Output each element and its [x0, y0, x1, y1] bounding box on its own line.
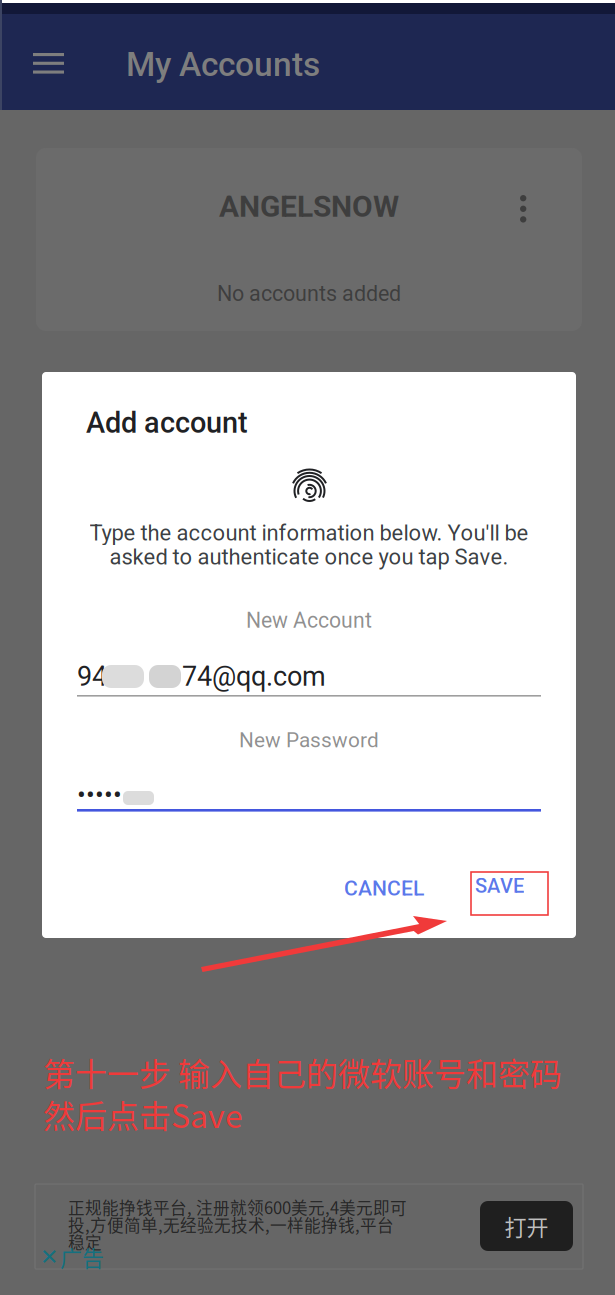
staticText: 然后点击Save [43, 1091, 243, 1137]
button[interactable]: Account options [498, 178, 549, 240]
button[interactable]: 打开 [480, 1201, 573, 1251]
button[interactable]: CANCEL [326, 863, 442, 914]
staticText: New Account [246, 608, 372, 633]
staticText: 正规能挣钱平台, 注册就领600美元,4美元即可 [68, 1195, 407, 1219]
staticText: 打开 [504, 1210, 548, 1242]
button[interactable]: SAVE [464, 865, 551, 918]
staticText: 广告 [60, 1241, 104, 1273]
button[interactable]: ✕ [36, 1239, 108, 1275]
staticText: 94 [77, 661, 107, 692]
staticText: My Accounts [126, 45, 320, 84]
staticText: No accounts added [217, 281, 401, 306]
staticText: ANGELSNOW [219, 189, 399, 224]
staticText: ••••• [77, 780, 122, 810]
staticText: Add account [86, 406, 248, 440]
staticText: 第十一步 输入自己的微软账号和密码 [43, 1049, 562, 1095]
staticText: ✕ [40, 1244, 58, 1270]
staticText: 投,方便简单,无经验无技术,一样能挣钱,平台 [68, 1212, 394, 1236]
staticText: New Password [239, 728, 379, 752]
staticText: Type the account information below. You'… [89, 520, 528, 546]
staticText: CANCEL [344, 876, 424, 901]
staticText: asked to authenticate once you tap Save. [109, 544, 508, 570]
staticText: 稳定 [68, 1230, 102, 1254]
staticText: 74@qq.com [182, 661, 326, 692]
staticText: SAVE [475, 874, 524, 898]
button[interactable]: Open navigation menu [0, 27, 95, 100]
